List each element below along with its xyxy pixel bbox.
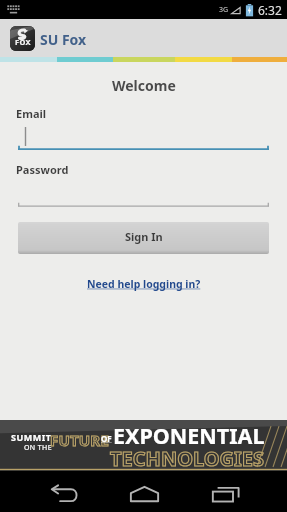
staticText: ON THE xyxy=(24,443,52,453)
staticText: TECHNOLOGIES xyxy=(110,445,265,472)
staticText: FUTURE xyxy=(50,430,110,450)
staticText: FOX xyxy=(15,37,31,47)
staticText: EXPONENTIAL xyxy=(113,421,265,450)
button[interactable]: Recent apps xyxy=(208,481,243,506)
button[interactable]: Home xyxy=(127,481,162,506)
button[interactable]: Need help logging in? xyxy=(87,277,201,291)
staticText: 6:32 xyxy=(258,2,282,18)
staticText: Email xyxy=(16,106,47,121)
staticText: Welcome xyxy=(112,76,176,95)
button[interactable] xyxy=(18,183,269,208)
staticText: OF xyxy=(101,433,112,444)
button[interactable]: Sign In xyxy=(18,222,269,254)
staticText: SU Fox xyxy=(40,30,87,49)
staticText: 3G xyxy=(219,5,229,15)
button[interactable] xyxy=(18,126,269,151)
button[interactable]: Back xyxy=(46,481,83,506)
staticText: SUMMIT xyxy=(11,431,52,443)
staticText: Sign In xyxy=(125,229,163,244)
staticText: Password xyxy=(16,162,69,177)
